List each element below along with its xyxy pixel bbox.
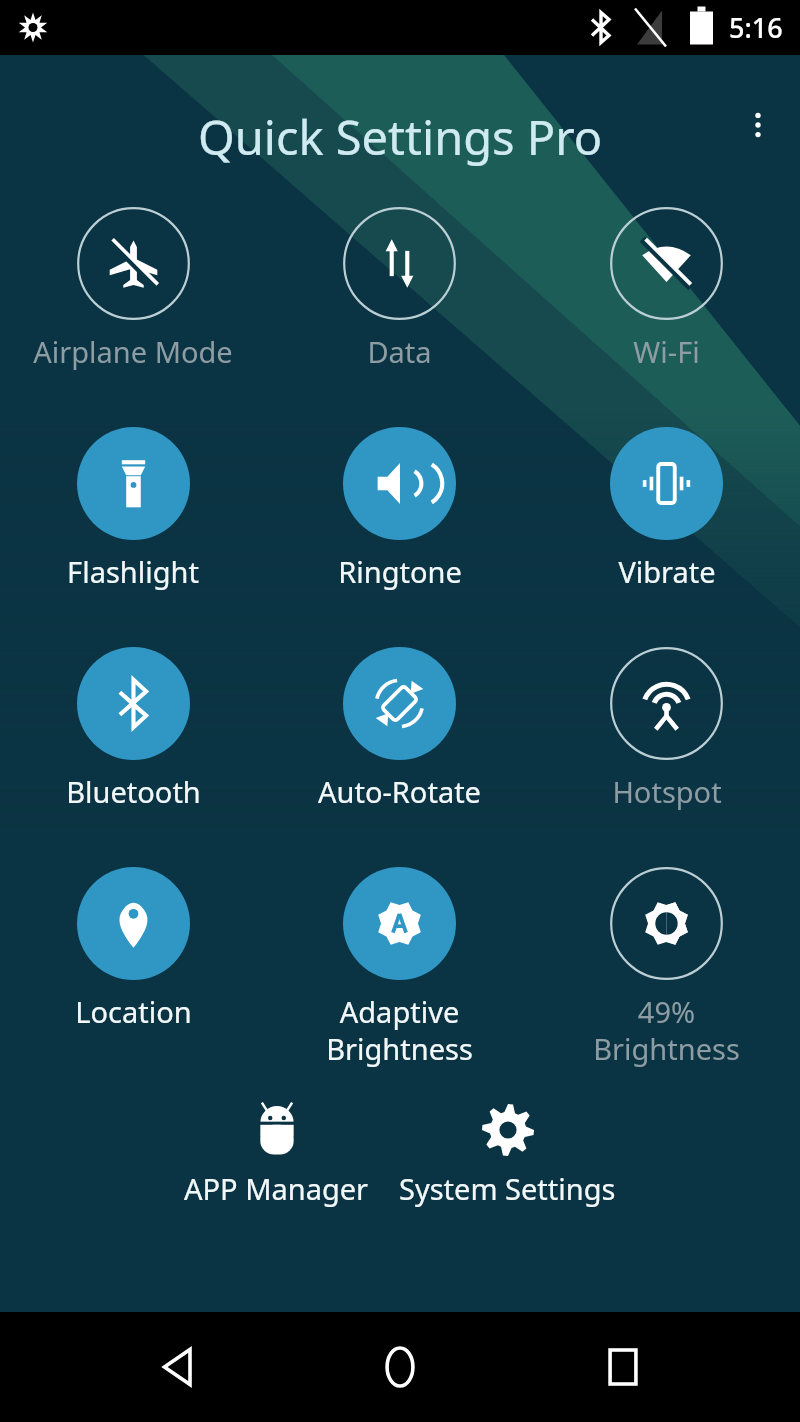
staticText: Airplane Mode: [33, 332, 233, 371]
staticText: Quick Settings Pro: [198, 105, 603, 169]
staticText: Vibrate: [618, 552, 716, 591]
button[interactable]: Flashlight: [0, 423, 266, 643]
staticText: System Settings: [399, 1169, 616, 1208]
button[interactable]: Wi-Fi: [533, 203, 800, 423]
staticText: Location: [75, 992, 192, 1031]
button[interactable]: APP Manager: [176, 1099, 377, 1208]
button[interactable]: Location: [0, 863, 266, 1083]
staticText: 49% Brightness: [593, 992, 740, 1069]
button[interactable]: Auto-Rotate: [266, 643, 533, 863]
staticText: Auto-Rotate: [318, 772, 481, 811]
staticText: Hotspot: [612, 772, 722, 811]
button[interactable]: Hotspot: [533, 643, 800, 863]
staticText: 5:16: [729, 9, 783, 46]
button[interactable]: Bluetooth: [0, 643, 266, 863]
button[interactable]: Recents: [578, 1322, 668, 1412]
staticText: Adaptive Brightness: [326, 992, 473, 1069]
button[interactable]: More options: [730, 97, 786, 153]
button[interactable]: Home: [355, 1322, 445, 1412]
button[interactable]: Data: [266, 203, 533, 423]
button[interactable]: System Settings: [391, 1099, 624, 1208]
button[interactable]: 49% Brightness: [533, 863, 800, 1083]
staticText: APP Manager: [184, 1169, 369, 1208]
staticText: Bluetooth: [66, 772, 201, 811]
staticText: Ringtone: [338, 552, 462, 591]
staticText: Data: [367, 332, 432, 371]
button[interactable]: Airplane Mode: [0, 203, 266, 423]
button[interactable]: Adaptive Brightness: [266, 863, 533, 1083]
staticText: Flashlight: [67, 552, 199, 591]
button[interactable]: Back: [133, 1322, 223, 1412]
staticText: Wi-Fi: [633, 332, 700, 371]
button[interactable]: Vibrate: [533, 423, 800, 643]
button[interactable]: Ringtone: [266, 423, 533, 643]
